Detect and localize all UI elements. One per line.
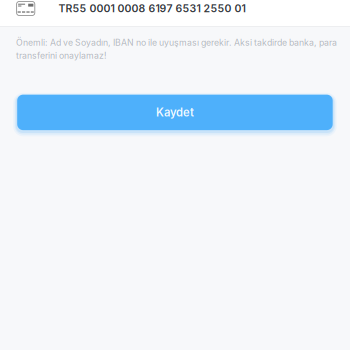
staticText: TR55 0001 0008 6197 6531 2550 01 — [58, 2, 245, 15]
staticText: Önemli: Ad ve Soyadın, IBAN no ile uyuşm… — [16, 36, 337, 62]
staticText: Kaydet — [156, 106, 194, 119]
button[interactable]: Kaydet — [13, 89, 337, 135]
